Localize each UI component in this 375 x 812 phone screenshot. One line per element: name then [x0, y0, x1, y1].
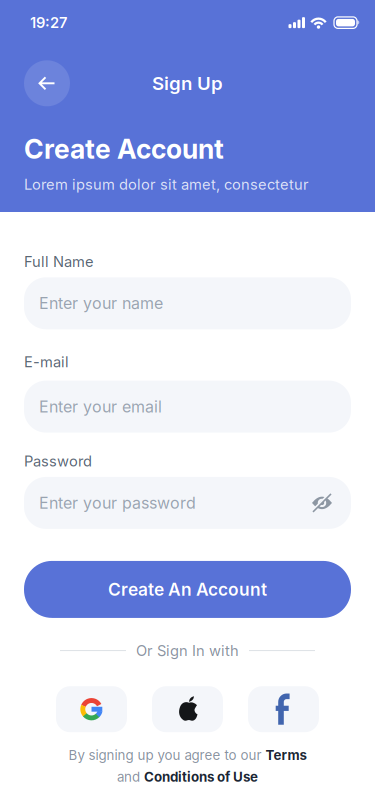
button[interactable]: Create An Account: [24, 561, 351, 618]
staticText: Enter your password: [39, 493, 196, 512]
button[interactable]: Enter your name: [24, 277, 351, 329]
button[interactable]: Sign in with Google: [56, 686, 127, 732]
staticText: and: [117, 769, 140, 785]
button[interactable]: Back: [24, 60, 70, 106]
staticText: E-mail: [24, 353, 69, 371]
staticText: Or Sign In with: [136, 642, 239, 659]
staticText: Enter your name: [39, 294, 163, 313]
button[interactable]: Enter your password: [24, 477, 351, 529]
staticText: Terms: [265, 747, 306, 763]
button[interactable]: Terms: [265, 747, 306, 763]
button[interactable]: Sign in with Facebook: [248, 686, 319, 732]
staticText: Lorem ipsum dolor sit amet, consectetur: [24, 176, 309, 193]
button[interactable]: Sign in with Apple: [152, 686, 223, 732]
staticText: 19:27: [30, 14, 67, 31]
staticText: Conditions of Use: [144, 769, 258, 785]
staticText: Sign Up: [152, 72, 223, 94]
button[interactable]: Enter your email: [24, 381, 351, 433]
button[interactable]: Conditions of Use: [144, 769, 258, 785]
staticText: Create Account: [24, 133, 224, 165]
staticText: Password: [24, 453, 92, 470]
staticText: Enter your email: [39, 397, 162, 416]
staticText: Full Name: [24, 253, 94, 270]
staticText: By signing up you agree to our: [68, 747, 261, 763]
staticText: Create An Account: [108, 579, 267, 600]
